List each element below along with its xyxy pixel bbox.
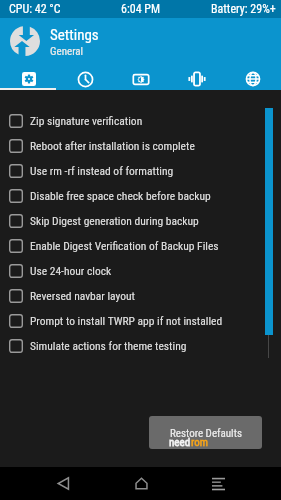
button[interactable]: Prompt to install TWRP app if not instal… [0, 308, 281, 333]
staticText: Enable Digest Verification of Backup Fil… [30, 239, 219, 252]
button[interactable]: Reboot after installation is complete [0, 133, 281, 158]
staticText: CPU: 42 °C [9, 2, 61, 16]
button[interactable]: Restore Defaults [149, 416, 262, 449]
button[interactable]: Skip Digest generation during backup [0, 208, 281, 233]
button[interactable]: Home [122, 467, 160, 500]
button[interactable]: Reversed navbar layout [0, 283, 281, 308]
button[interactable]: Vibration settings [169, 66, 225, 90]
staticText: 6:04 PM [121, 2, 161, 16]
staticText: Zip signature verification [30, 114, 143, 127]
button[interactable]: Disable free space check before backup [0, 183, 281, 208]
staticText: Disable free space check before backup [30, 189, 211, 202]
button[interactable]: Recent apps [199, 467, 237, 500]
button[interactable]: Time settings [57, 66, 113, 90]
staticText: Use 24-hour clock [30, 264, 112, 277]
staticText: rom [191, 436, 209, 449]
staticText: need [169, 436, 191, 449]
button[interactable]: Screen settings [113, 66, 169, 90]
staticText: Reversed navbar layout [30, 289, 135, 302]
staticText: Simulate actions for theme testing [30, 339, 187, 352]
button[interactable]: General settings [0, 66, 57, 90]
button[interactable]: Use 24-hour clock [0, 258, 281, 283]
staticText: Restore Defaults [170, 427, 242, 440]
staticText: Battery: 29%+ [211, 2, 276, 16]
button[interactable]: Back [44, 467, 82, 500]
staticText: Reboot after installation is complete [30, 139, 195, 152]
staticText: Prompt to install TWRP app if not instal… [30, 314, 223, 327]
staticText: Settings [50, 26, 99, 44]
button[interactable]: Use rm -rf instead of formatting [0, 158, 281, 183]
staticText: Skip Digest generation during backup [30, 214, 199, 227]
button[interactable]: Language settings [225, 66, 281, 90]
staticText: Use rm -rf instead of formatting [30, 164, 174, 177]
staticText: General [50, 45, 84, 58]
button[interactable]: Enable Digest Verification of Backup Fil… [0, 233, 281, 258]
button[interactable]: Simulate actions for theme testing [0, 333, 281, 358]
button[interactable]: Zip signature verification [0, 108, 281, 133]
